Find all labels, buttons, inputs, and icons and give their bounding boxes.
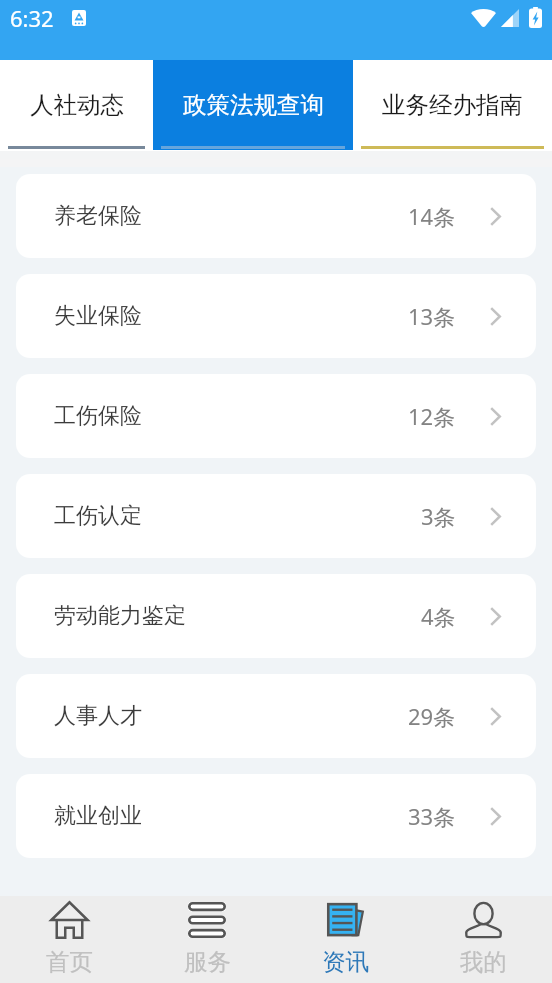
other: 我的 bbox=[465, 902, 502, 938]
staticText: 工伤认定 bbox=[54, 502, 142, 530]
button[interactable]: 资讯 bbox=[276, 896, 414, 983]
button[interactable]: 业务经办指南 bbox=[353, 60, 552, 145]
button[interactable]: 服务 bbox=[138, 896, 276, 983]
button[interactable]: 失业保险 bbox=[16, 274, 536, 358]
other: 服务 bbox=[188, 902, 226, 938]
button[interactable]: 政策法规查询 bbox=[153, 60, 353, 145]
staticText: 业务经办指南 bbox=[382, 90, 523, 120]
staticText: 就业创业 bbox=[54, 802, 142, 830]
staticText: 首页 bbox=[46, 947, 93, 977]
staticText: 我的 bbox=[460, 947, 507, 977]
button[interactable]: 就业创业 bbox=[16, 774, 536, 858]
button[interactable]: 首页 bbox=[0, 896, 138, 983]
staticText: 工伤保险 bbox=[54, 402, 142, 430]
staticText: 劳动能力鉴定 bbox=[54, 602, 186, 630]
staticText: 失业保险 bbox=[54, 302, 142, 330]
staticText: 服务 bbox=[184, 947, 231, 977]
staticText: 资讯 bbox=[322, 947, 369, 977]
staticText: 13条 bbox=[408, 301, 456, 331]
staticText: 人社动态 bbox=[30, 90, 124, 120]
other: 首页 bbox=[51, 902, 88, 938]
button[interactable]: 工伤保险 bbox=[16, 374, 536, 458]
button[interactable]: 人事人才 bbox=[16, 674, 536, 758]
button[interactable]: 我的 bbox=[414, 896, 552, 983]
staticText: 14条 bbox=[408, 201, 456, 231]
staticText: 12条 bbox=[408, 401, 456, 431]
staticText: 33条 bbox=[408, 801, 456, 831]
button[interactable]: 工伤认定 bbox=[16, 474, 536, 558]
button[interactable]: 养老保险 bbox=[16, 174, 536, 258]
other: 资讯 bbox=[326, 902, 364, 938]
staticText: 6:32 bbox=[10, 3, 54, 33]
staticText: 政策法规查询 bbox=[183, 90, 324, 120]
staticText: 29条 bbox=[408, 701, 456, 731]
staticText: 3条 bbox=[421, 501, 456, 531]
staticText: 人事人才 bbox=[54, 702, 142, 730]
staticText: 养老保险 bbox=[54, 202, 142, 230]
button[interactable]: 劳动能力鉴定 bbox=[16, 574, 536, 658]
staticText: 4条 bbox=[421, 601, 456, 631]
button[interactable]: 人社动态 bbox=[0, 60, 153, 145]
